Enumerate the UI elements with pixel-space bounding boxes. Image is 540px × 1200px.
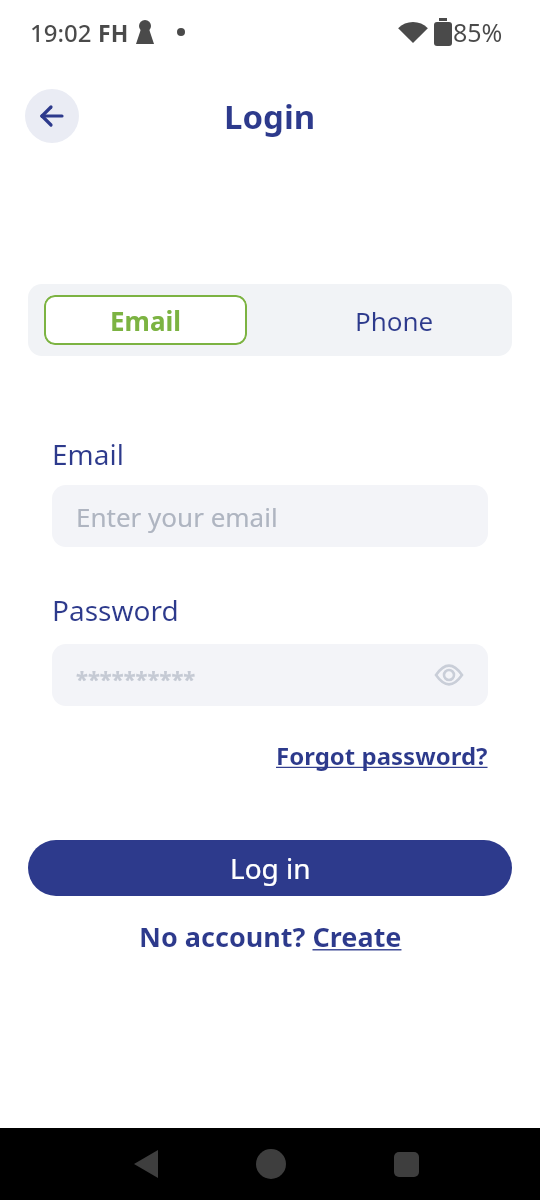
staticText: 85% xyxy=(453,15,503,49)
button[interactable]: No account? Create xyxy=(0,918,540,955)
button[interactable]: ********** xyxy=(52,644,488,706)
staticText: Phone xyxy=(355,303,434,338)
button[interactable] xyxy=(384,1128,428,1200)
staticText: No account? Create xyxy=(139,918,402,955)
button[interactable] xyxy=(124,1128,168,1200)
staticText: Email xyxy=(110,303,182,338)
button[interactable]: Log in xyxy=(28,840,512,896)
staticText: Enter your email xyxy=(76,499,278,534)
button[interactable] xyxy=(249,1128,293,1200)
staticText: ********** xyxy=(76,663,196,693)
staticText: 19:02 xyxy=(30,16,92,49)
button[interactable]: Email xyxy=(44,295,247,345)
staticText: FH xyxy=(98,17,129,48)
button[interactable]: Enter your email xyxy=(52,485,488,547)
button[interactable] xyxy=(25,89,79,143)
button[interactable]: Forgot password? xyxy=(276,739,488,772)
staticText: Login xyxy=(224,94,316,139)
staticText: Password xyxy=(52,591,179,629)
staticText: Log in xyxy=(230,849,311,887)
staticText: Email xyxy=(52,435,124,473)
button[interactable]: Phone xyxy=(293,295,496,345)
